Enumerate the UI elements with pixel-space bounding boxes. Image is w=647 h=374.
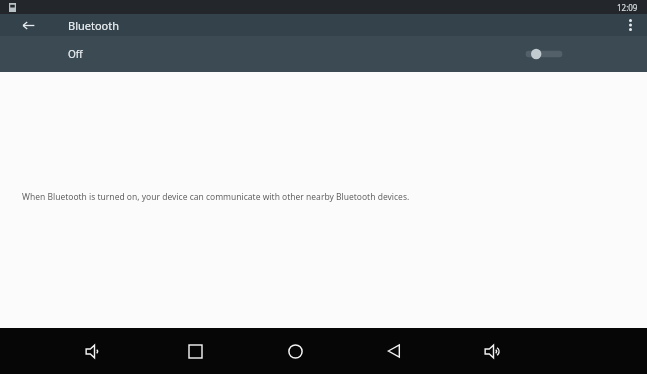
button[interactable]: Volume up bbox=[461, 328, 525, 374]
staticText: Off bbox=[68, 47, 83, 61]
button[interactable]: Volume down bbox=[62, 328, 127, 374]
staticText: Bluetooth bbox=[68, 18, 120, 33]
button[interactable]: Back bbox=[16, 14, 40, 36]
button[interactable]: More options bbox=[620, 15, 640, 35]
button[interactable]: Recents bbox=[163, 328, 228, 374]
button[interactable]: Back bbox=[362, 328, 426, 374]
button[interactable]: Off bbox=[0, 36, 647, 72]
staticText: 12:09 bbox=[617, 2, 638, 13]
staticText: When Bluetooth is turned on, your device… bbox=[22, 191, 410, 203]
button[interactable]: Home bbox=[263, 328, 327, 374]
